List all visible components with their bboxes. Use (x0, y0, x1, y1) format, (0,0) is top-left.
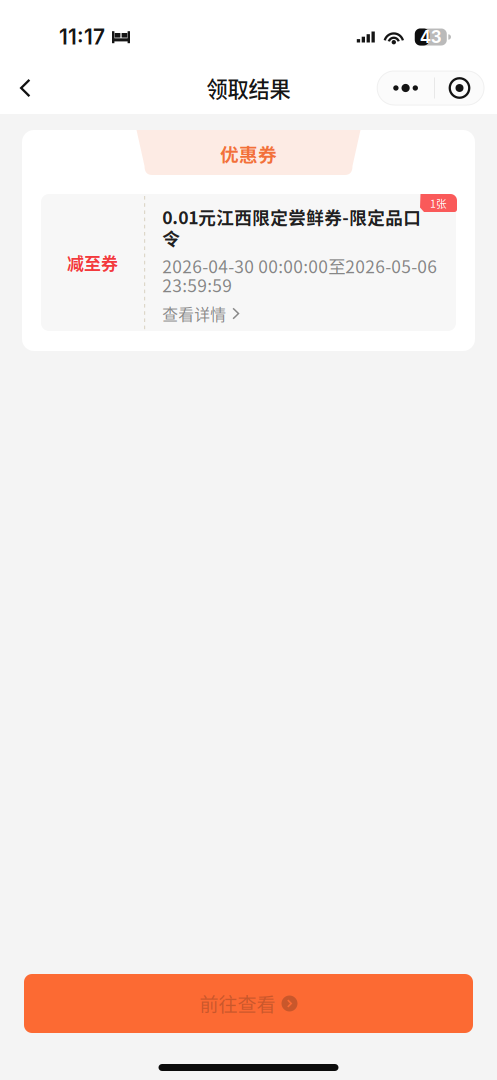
button[interactable]: 前往查看 (24, 974, 473, 1033)
staticText: 1张 (430, 195, 447, 211)
staticText: 0.01元江西限定尝鲜券-限定品口令 (162, 206, 421, 248)
button[interactable]: Close (435, 71, 484, 105)
button[interactable]: More options (377, 71, 434, 105)
staticText: 43 (420, 27, 442, 47)
staticText: 前往查看 (199, 990, 275, 1017)
staticText: 领取结果 (206, 73, 290, 103)
staticText: 查看详情 (162, 302, 226, 325)
staticText: 减至券 (67, 250, 118, 275)
staticText: 2026-04-30 00:00:00至2026-05-06 23:59:59 (162, 256, 437, 294)
button[interactable]: Back (0, 66, 48, 110)
button[interactable]: 查看详情 (162, 302, 239, 325)
staticText: 优惠券 (220, 140, 277, 167)
staticText: 11:17 (59, 24, 105, 50)
